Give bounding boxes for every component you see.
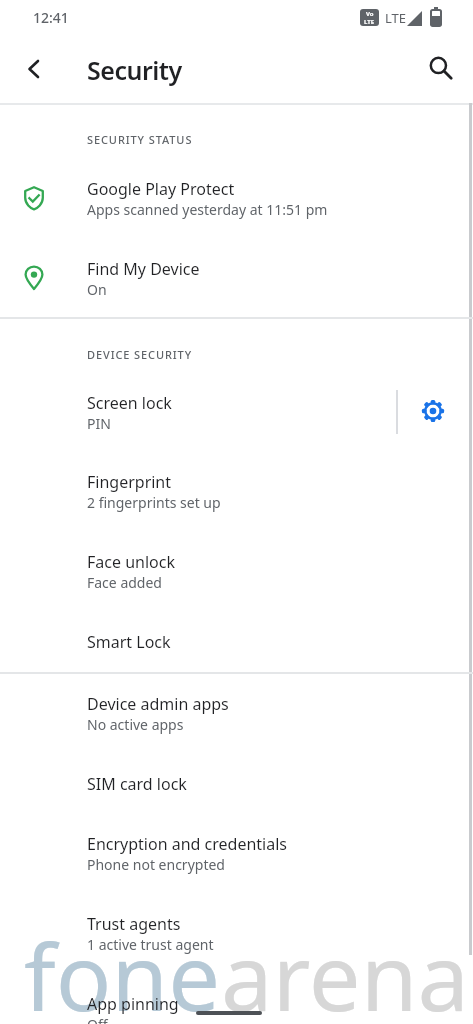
staticText: Trust agents bbox=[87, 913, 181, 935]
button[interactable]: Google Play Protect bbox=[0, 158, 473, 238]
staticText: arena bbox=[221, 913, 470, 1024]
staticText: 1 active trust agent bbox=[87, 935, 214, 954]
staticText: 12:41 bbox=[33, 8, 69, 27]
button[interactable] bbox=[419, 46, 463, 90]
button[interactable]: Screen lock bbox=[0, 372, 473, 452]
button[interactable]: Trust agents bbox=[0, 893, 473, 973]
staticText: No active apps bbox=[87, 715, 184, 734]
staticText: Phone not encrypted bbox=[87, 855, 225, 874]
button[interactable]: Find My Device bbox=[0, 238, 473, 318]
staticText: PIN bbox=[87, 414, 111, 433]
staticText: DEVICE SECURITY bbox=[87, 347, 193, 362]
button[interactable]: Face unlock bbox=[0, 531, 473, 611]
staticText: Face unlock bbox=[87, 551, 175, 573]
button[interactable]: Smart Lock bbox=[0, 611, 473, 671]
staticText: SIM card lock bbox=[87, 773, 187, 795]
staticText: Screen lock bbox=[87, 392, 172, 414]
staticText: Face added bbox=[87, 573, 162, 592]
staticText: On bbox=[87, 280, 107, 299]
button[interactable] bbox=[413, 391, 453, 431]
button[interactable]: SIM card lock bbox=[0, 753, 473, 813]
staticText: LTE bbox=[385, 9, 407, 27]
button[interactable] bbox=[12, 47, 56, 91]
staticText: App pinning bbox=[87, 993, 179, 1015]
staticText: Vo bbox=[366, 10, 374, 18]
staticText: Security bbox=[87, 53, 182, 87]
staticText: Smart Lock bbox=[87, 631, 171, 653]
staticText: Off bbox=[87, 1015, 108, 1024]
staticText: 2 fingerprints set up bbox=[87, 493, 221, 512]
staticText: Google Play Protect bbox=[87, 178, 235, 200]
button[interactable]: Fingerprint bbox=[0, 451, 473, 531]
staticText: Apps scanned yesterday at 11:51 pm bbox=[87, 200, 328, 219]
button[interactable]: App pinning bbox=[0, 973, 473, 1024]
button[interactable]: Device admin apps bbox=[0, 673, 473, 753]
staticText: Device admin apps bbox=[87, 693, 229, 715]
button[interactable]: Encryption and credentials bbox=[0, 813, 473, 893]
staticText: Find My Device bbox=[87, 258, 200, 280]
staticText: LTE bbox=[364, 18, 375, 26]
staticText: Encryption and credentials bbox=[87, 833, 287, 855]
staticText: SECURITY STATUS bbox=[87, 132, 193, 147]
staticText: Fingerprint bbox=[87, 471, 172, 493]
staticText: fone bbox=[24, 913, 221, 1024]
